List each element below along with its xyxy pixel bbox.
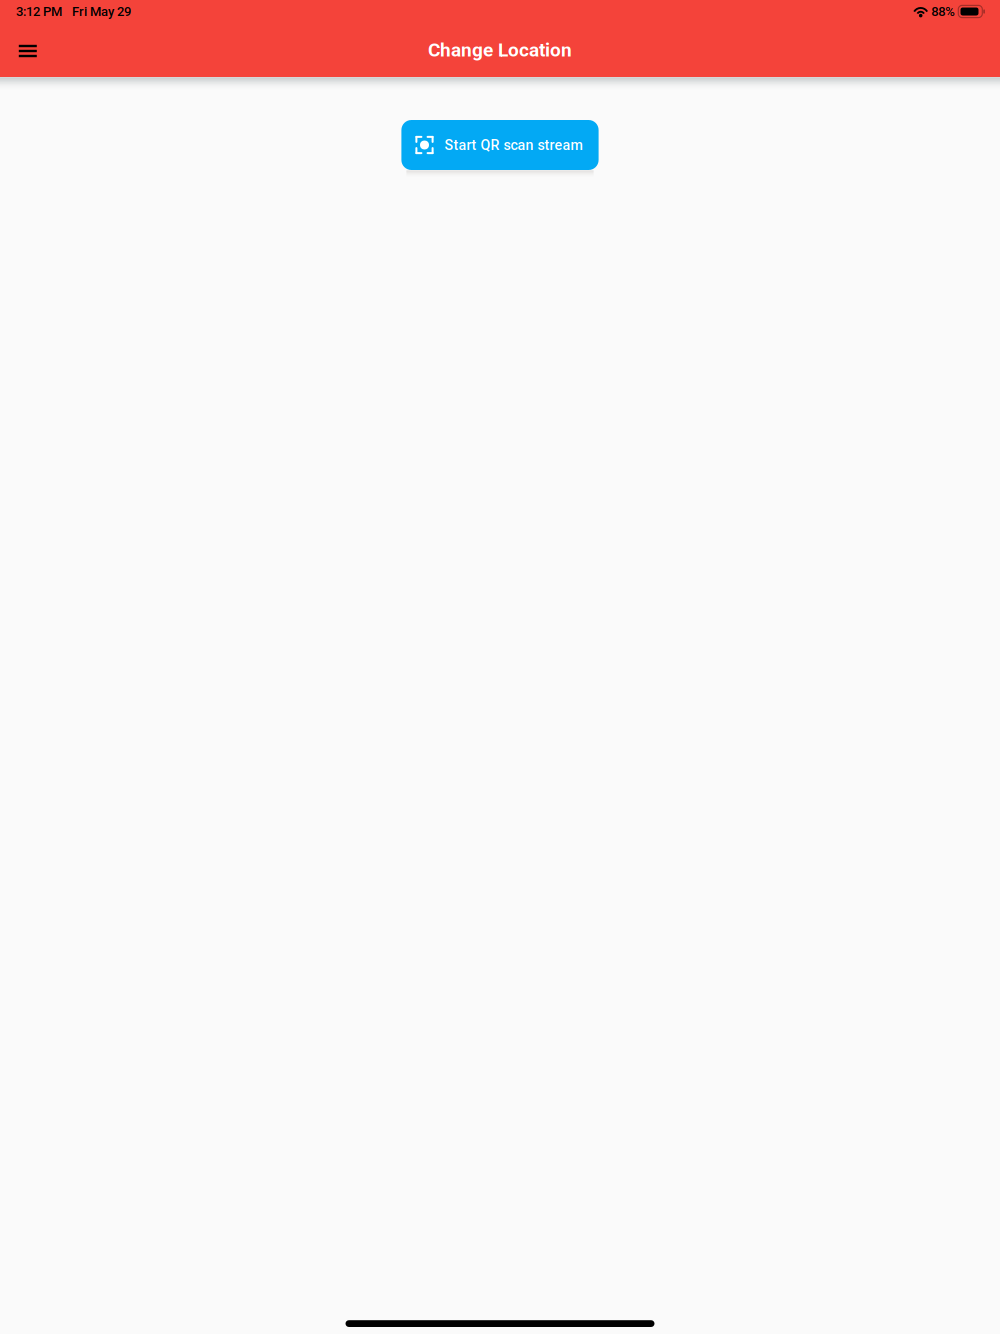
button[interactable]: Open navigation menu xyxy=(5,28,49,72)
staticText: Change Location xyxy=(428,39,572,61)
staticText: 3:12 PM xyxy=(16,4,62,19)
button[interactable]: Start QR scan stream xyxy=(401,120,599,170)
staticText: Fri May 29 xyxy=(72,4,131,19)
staticText: 88% xyxy=(931,4,955,19)
staticText: Start QR scan stream xyxy=(445,137,583,153)
